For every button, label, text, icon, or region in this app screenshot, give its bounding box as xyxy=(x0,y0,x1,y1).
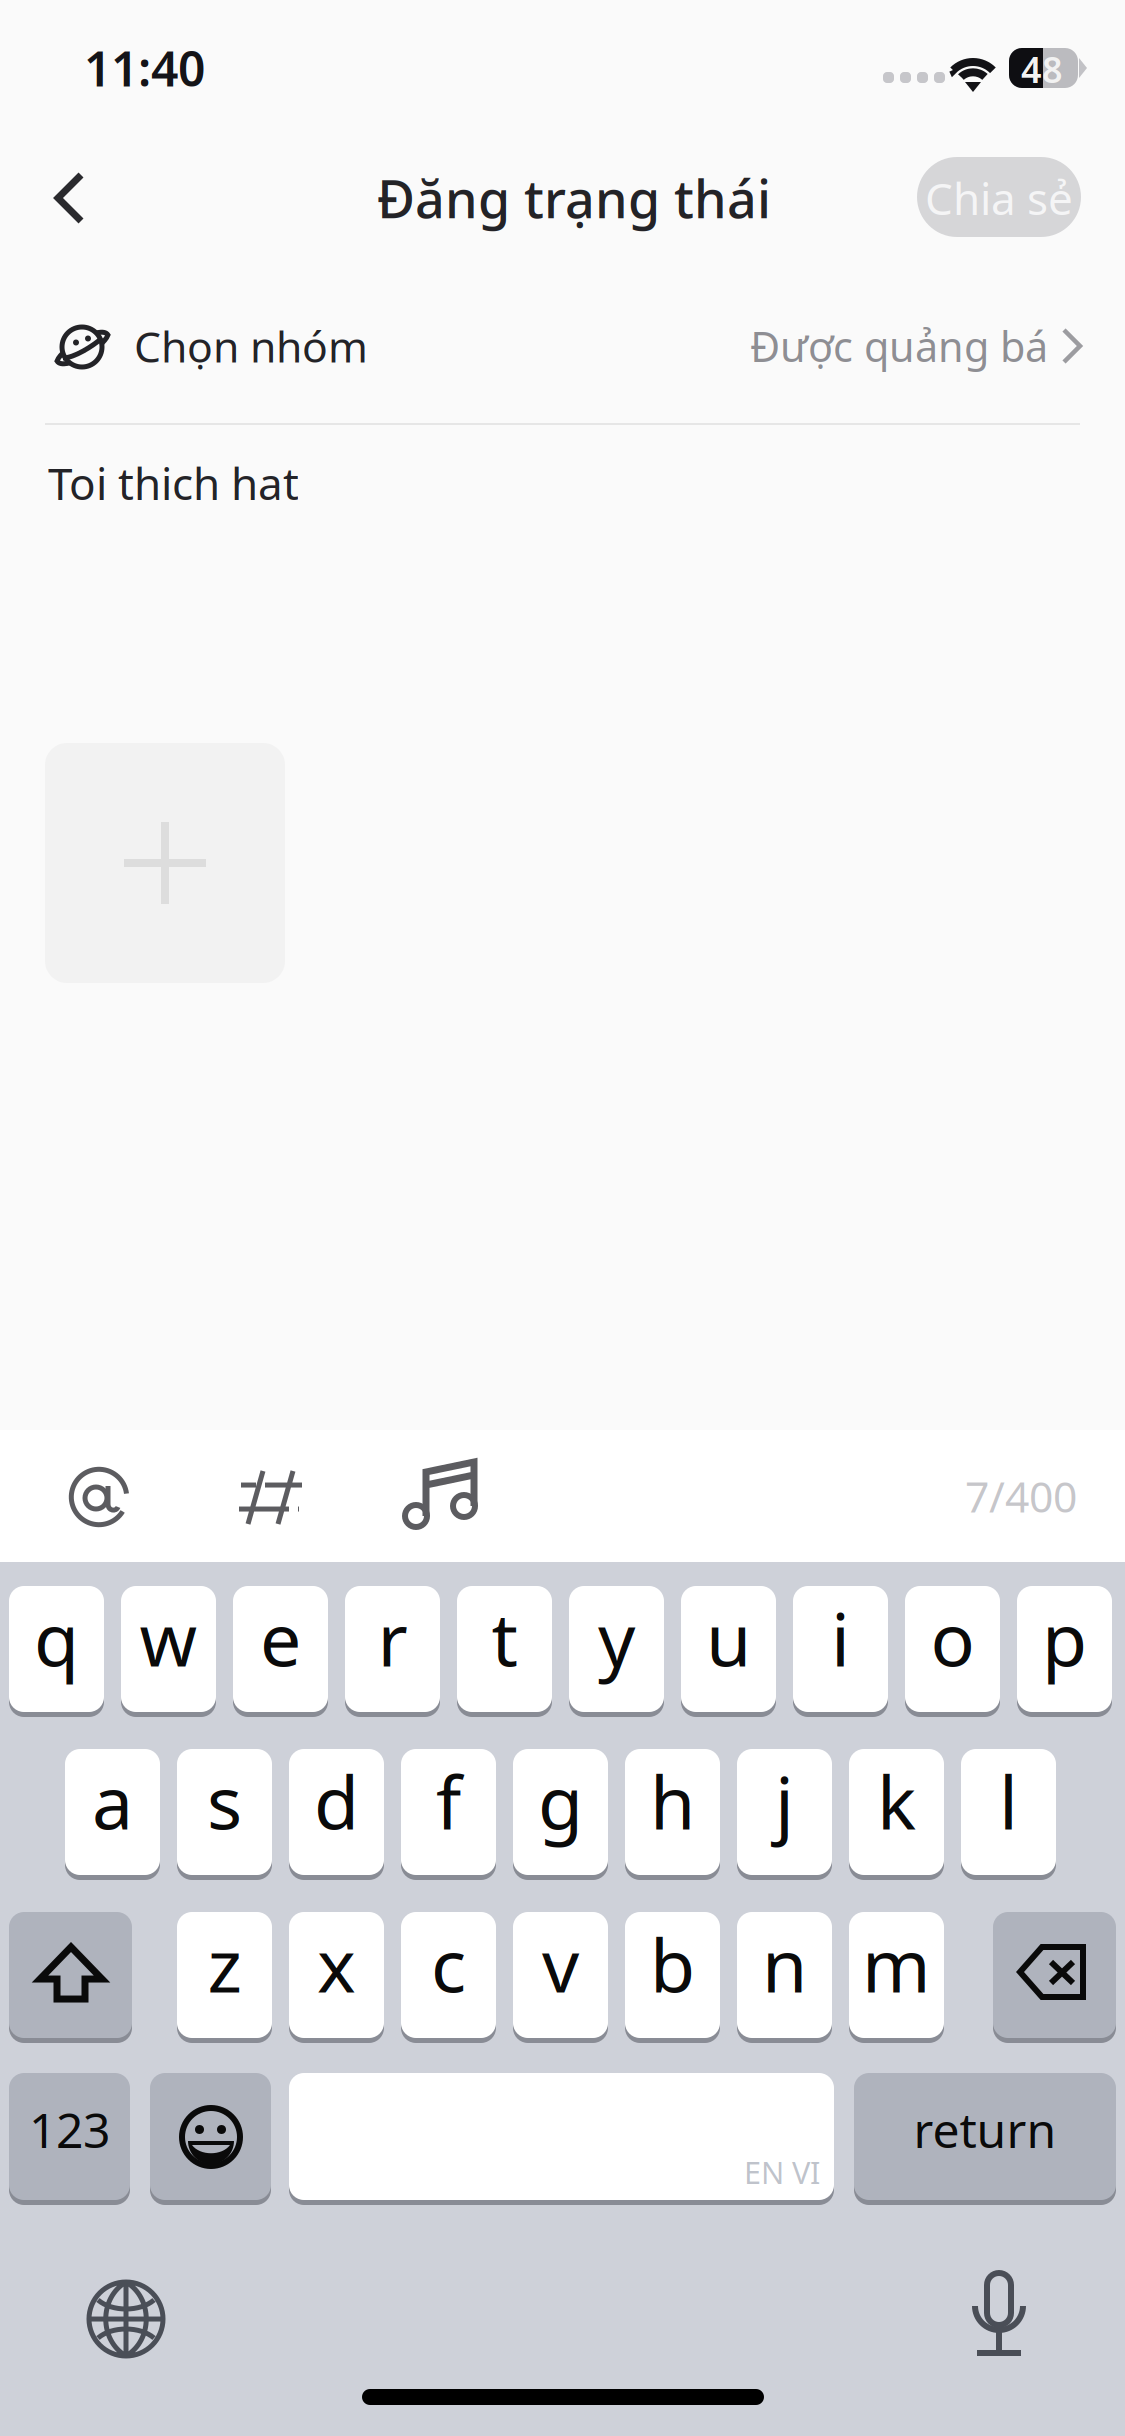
staticText: h xyxy=(650,1752,695,1850)
button[interactable]: Chia sẻ xyxy=(917,157,1081,237)
staticText: v xyxy=(542,1915,579,2013)
staticText: Đăng trạng thái xyxy=(377,163,771,233)
button[interactable]: l xyxy=(961,1749,1056,1880)
button[interactable]: z xyxy=(177,1912,272,2043)
button[interactable]: m xyxy=(849,1912,944,2043)
staticText: return xyxy=(913,2097,1056,2161)
button[interactable]: x xyxy=(289,1912,384,2043)
button[interactable]: 123 xyxy=(9,2073,130,2205)
button[interactable]: w xyxy=(121,1586,216,1717)
staticText: y xyxy=(598,1589,635,1687)
button[interactable]: Dictation xyxy=(940,2260,1058,2378)
button[interactable]: q xyxy=(9,1586,104,1717)
staticText: f xyxy=(436,1752,461,1850)
staticText: 123 xyxy=(29,2097,110,2161)
button[interactable]: f xyxy=(401,1749,496,1880)
button[interactable]: t xyxy=(457,1586,552,1717)
staticText: g xyxy=(538,1752,583,1850)
button[interactable]: o xyxy=(905,1586,1000,1717)
staticText: t xyxy=(491,1589,517,1687)
staticText: k xyxy=(877,1752,916,1850)
staticText: EN VI xyxy=(744,2152,820,2192)
staticText: r xyxy=(377,1589,407,1687)
staticText: u xyxy=(706,1589,751,1687)
button[interactable]: r xyxy=(345,1586,440,1717)
button[interactable]: h xyxy=(625,1749,720,1880)
button[interactable]: Space xyxy=(289,2073,834,2205)
button[interactable]: u xyxy=(681,1586,776,1717)
button[interactable]: j xyxy=(737,1749,832,1880)
staticText: b xyxy=(650,1915,695,2013)
button[interactable]: s xyxy=(177,1749,272,1880)
staticText: d xyxy=(314,1752,359,1850)
staticText: l xyxy=(999,1752,1018,1850)
staticText: a xyxy=(92,1752,133,1850)
button[interactable]: d xyxy=(289,1749,384,1880)
staticText: Toi thich hat xyxy=(48,454,299,512)
staticText: c xyxy=(431,1915,466,2013)
staticText: Được quảng bá xyxy=(750,319,1048,373)
button[interactable]: y xyxy=(569,1586,664,1717)
staticText: w xyxy=(139,1589,197,1687)
staticText: z xyxy=(207,1915,241,2013)
button[interactable]: Emoji xyxy=(150,2073,271,2205)
staticText: m xyxy=(862,1915,931,2013)
staticText: Chọn nhóm xyxy=(134,318,368,374)
button[interactable]: return xyxy=(854,2073,1116,2205)
staticText: 7/400 xyxy=(965,1468,1077,1524)
staticText: q xyxy=(34,1589,79,1687)
button[interactable]: Delete xyxy=(993,1912,1116,2043)
button[interactable]: Hashtag xyxy=(212,1440,322,1550)
button[interactable]: Mention xyxy=(36,1440,146,1550)
staticText: n xyxy=(762,1915,807,2013)
button[interactable]: Add photo xyxy=(45,743,285,983)
button[interactable]: g xyxy=(513,1749,608,1880)
staticText: o xyxy=(930,1589,974,1687)
button[interactable]: b xyxy=(625,1912,720,2043)
button[interactable]: n xyxy=(737,1912,832,2043)
button[interactable]: Change keyboard xyxy=(66,2260,184,2378)
button[interactable]: Music xyxy=(378,1440,498,1550)
staticText: 11:40 xyxy=(84,36,205,100)
button[interactable]: Chọn nhóm xyxy=(0,288,1125,420)
button[interactable]: e xyxy=(233,1586,328,1717)
button[interactable]: Shift xyxy=(9,1912,132,2043)
staticText: x xyxy=(317,1915,356,2013)
button[interactable]: Back xyxy=(20,142,130,252)
button[interactable]: v xyxy=(513,1912,608,2043)
staticText: 48 xyxy=(1021,45,1063,93)
button[interactable]: p xyxy=(1017,1586,1112,1717)
button[interactable]: k xyxy=(849,1749,944,1880)
button[interactable]: i xyxy=(793,1586,888,1717)
button[interactable]: c xyxy=(401,1912,496,2043)
staticText: i xyxy=(831,1589,850,1687)
staticText: s xyxy=(207,1752,242,1850)
staticText: e xyxy=(260,1589,301,1687)
staticText: p xyxy=(1042,1589,1087,1687)
staticText: Chia sẻ xyxy=(925,169,1073,227)
button[interactable]: a xyxy=(65,1749,160,1880)
staticText: j xyxy=(775,1752,794,1850)
